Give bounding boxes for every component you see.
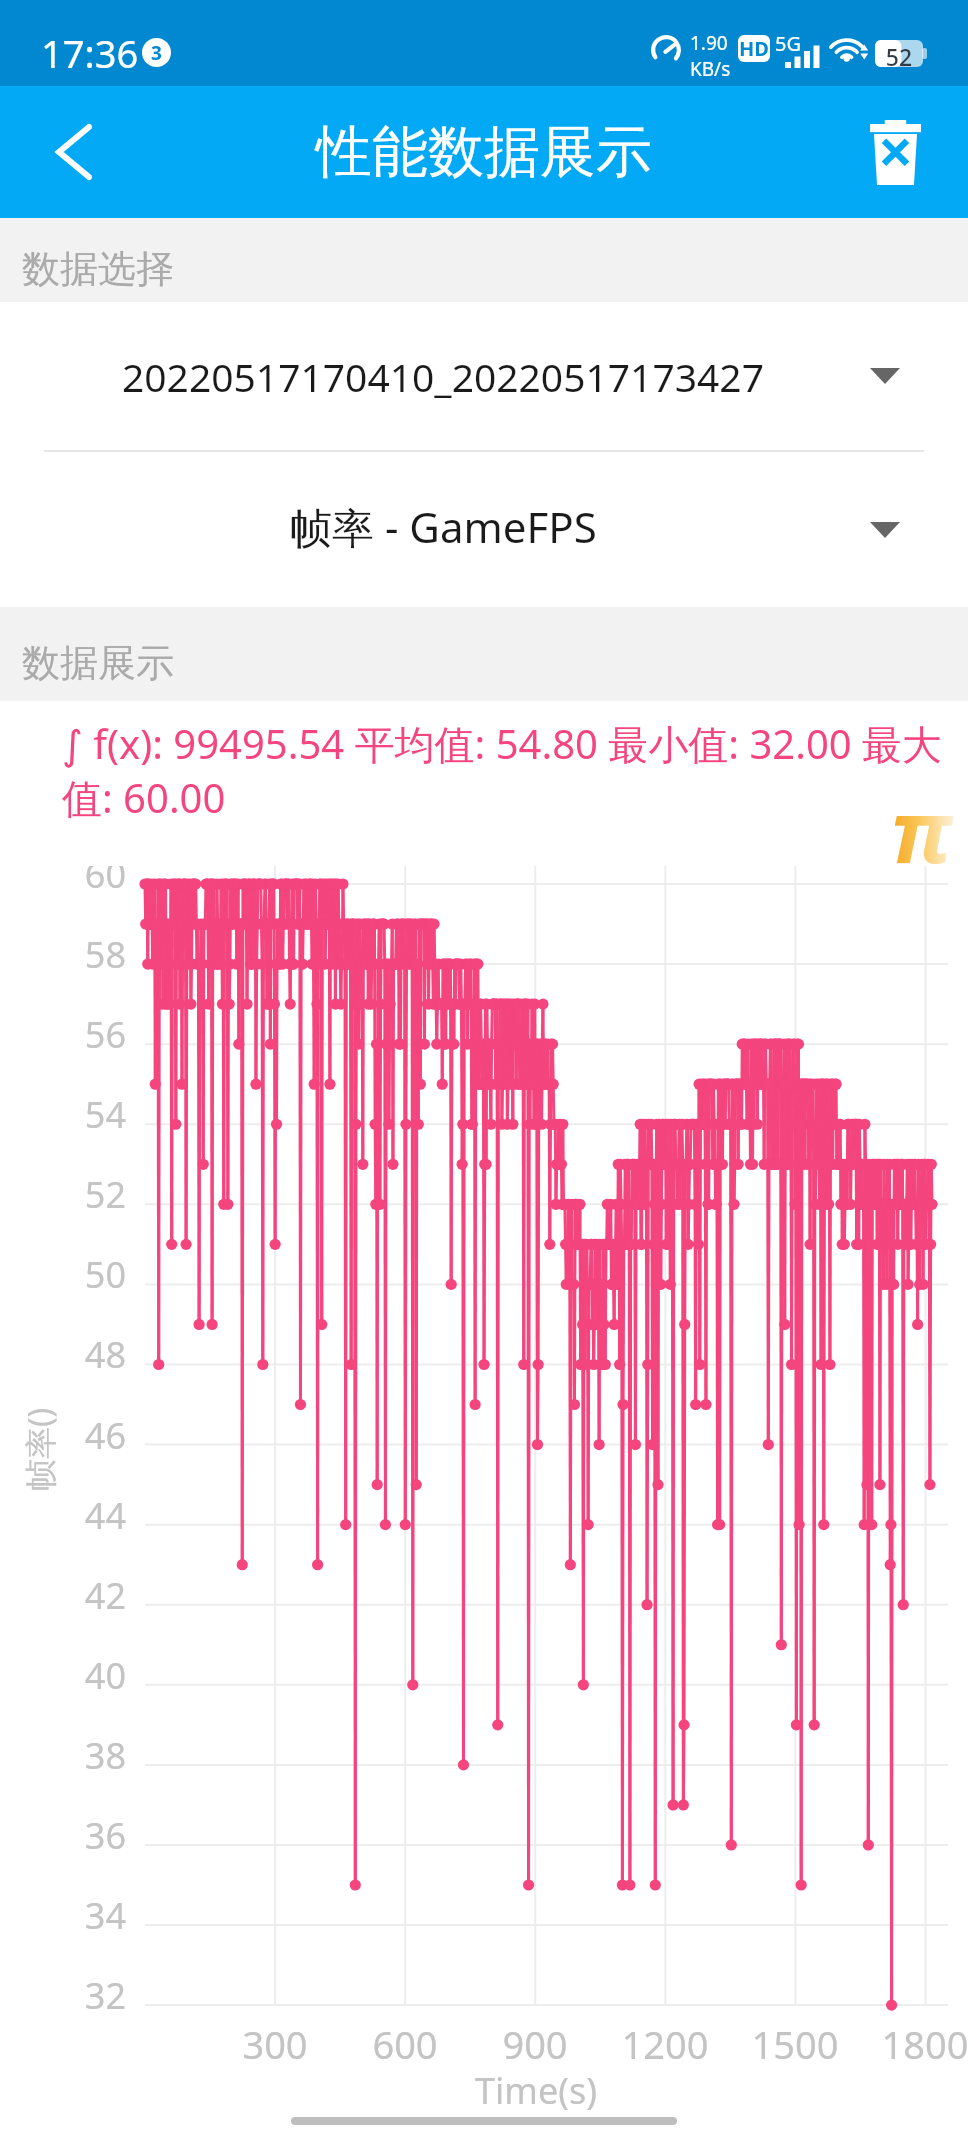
staticText: ∫ f(x): 99495.54 平均值: 54.80 最小值: 32.00 最…: [62, 716, 954, 825]
staticText: 38: [0, 1731, 126, 1780]
staticText: 42: [0, 1571, 126, 1620]
button[interactable]: 帧率 - GameFPS: [0, 452, 968, 607]
staticText: 性能数据展示: [316, 117, 652, 188]
staticText: 900: [455, 2018, 615, 2070]
staticText: 5G: [775, 30, 801, 57]
staticText: 32: [0, 1971, 126, 2020]
staticText: 数据展示: [22, 639, 174, 687]
staticText: 1500: [715, 2018, 875, 2070]
staticText: KB/s: [690, 56, 731, 82]
staticText: 1.90: [690, 30, 728, 56]
staticText: 34: [0, 1891, 126, 1940]
staticText: 60: [0, 866, 126, 899]
staticText: 帧率(): [18, 1407, 62, 1491]
button[interactable]: Back: [0, 86, 148, 218]
staticText: 52: [0, 1170, 126, 1219]
staticText: 52: [875, 41, 923, 68]
staticText: 50: [0, 1250, 126, 1299]
staticText: 帧率 - GameFPS: [290, 498, 597, 555]
staticText: 1800: [845, 2018, 968, 2070]
staticText: 1200: [585, 2018, 745, 2070]
staticText: 20220517170410_20220517173427: [122, 350, 764, 403]
staticText: 数据选择: [22, 245, 174, 293]
staticText: 300: [195, 2018, 355, 2070]
staticText: HD: [739, 35, 769, 62]
staticText: 40: [0, 1651, 126, 1700]
button[interactable]: 20220517170410_20220517173427: [0, 302, 968, 450]
staticText: 17:36: [41, 27, 139, 79]
staticText: 56: [0, 1010, 126, 1059]
button[interactable]: Delete: [822, 86, 968, 218]
staticText: 54: [0, 1090, 126, 1139]
staticText: 58: [0, 930, 126, 979]
staticText: 44: [0, 1491, 126, 1540]
staticText: 46: [0, 1411, 126, 1460]
staticText: 48: [0, 1330, 126, 1379]
staticText: 36: [0, 1811, 126, 1860]
staticText: 3: [151, 40, 162, 66]
staticText: 600: [325, 2018, 485, 2070]
staticText: Time(s): [416, 2066, 656, 2115]
staticText: π: [891, 771, 953, 888]
